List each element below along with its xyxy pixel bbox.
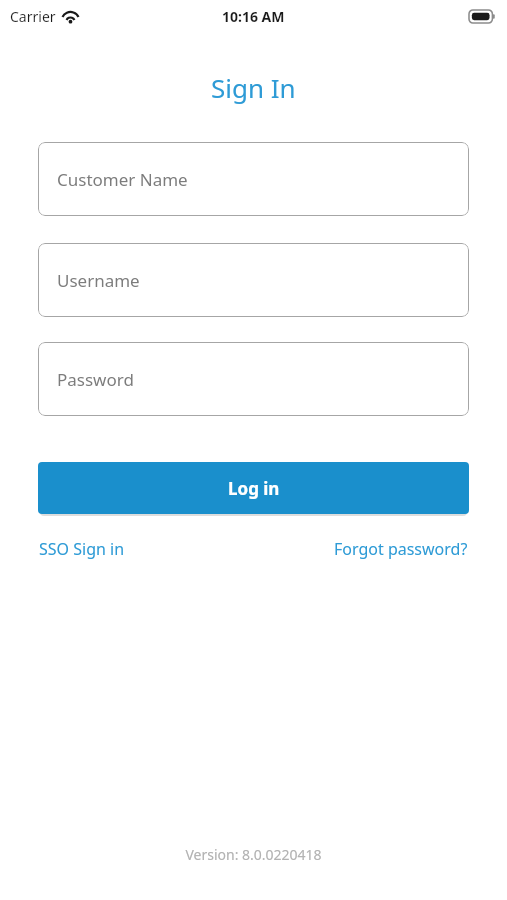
staticText: Forgot password? [334, 538, 468, 560]
staticText: SSO Sign in [39, 538, 125, 560]
staticText: Version: 8.0.0220418 [185, 845, 322, 864]
other: Battery full [469, 10, 495, 23]
staticText: Customer Name [57, 168, 188, 191]
button[interactable]: Username [38, 243, 469, 317]
staticText: Carrier [10, 7, 56, 26]
button[interactable]: Log in [38, 462, 469, 514]
staticText: Log in [228, 477, 280, 500]
staticText: 10:16 AM [222, 7, 285, 26]
staticText: Username [57, 269, 140, 292]
staticText: Sign In [211, 70, 296, 105]
button[interactable]: Forgot password? [333, 535, 469, 563]
button[interactable]: Password [38, 342, 469, 416]
button[interactable]: Customer Name [38, 142, 469, 216]
button[interactable]: SSO Sign in [38, 535, 126, 563]
staticText: Password [57, 368, 134, 391]
